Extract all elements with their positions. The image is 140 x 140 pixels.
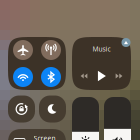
button[interactable]: Cellular Data <box>41 40 61 60</box>
button[interactable]: Rotation Lock <box>8 95 35 122</box>
button[interactable]: Next Track <box>115 72 122 79</box>
button[interactable]: Screen <box>8 129 66 140</box>
button[interactable]: Volume <box>104 97 131 140</box>
staticText: Screen <box>33 134 55 140</box>
button[interactable]: AirPlay <box>120 37 131 48</box>
button[interactable]: Wi‑Fi <box>13 67 33 87</box>
button[interactable]: Previous Track <box>80 72 87 79</box>
button[interactable]: Play <box>96 70 107 81</box>
button[interactable]: Bluetooth <box>41 67 61 87</box>
button[interactable]: Brightness <box>72 97 99 140</box>
button[interactable]: Do Not Disturb <box>39 95 66 122</box>
staticText: Music <box>92 45 110 53</box>
button[interactable]: Airplane Mode <box>13 40 33 60</box>
